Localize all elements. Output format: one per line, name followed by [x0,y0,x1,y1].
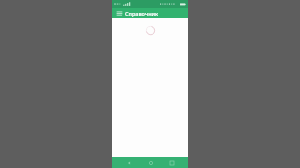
button[interactable]: Recent apps [167,158,176,167]
button[interactable]: Back [124,158,133,167]
button[interactable]: Open navigation menu [115,9,123,17]
staticText: Справочник [125,10,159,17]
button[interactable]: Home [146,158,155,167]
